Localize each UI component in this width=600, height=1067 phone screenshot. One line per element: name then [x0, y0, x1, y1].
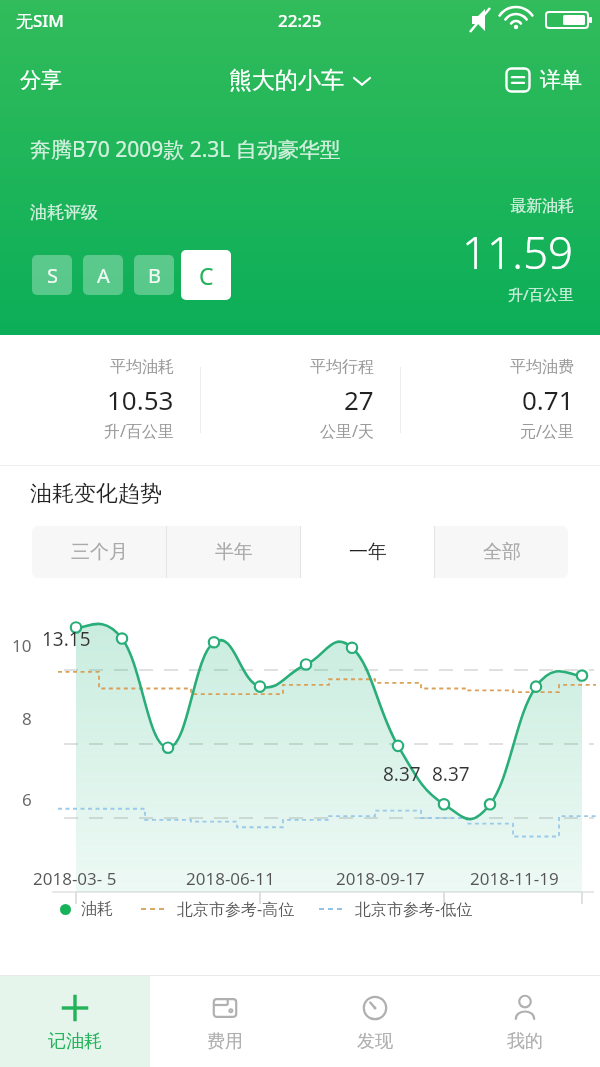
staticText: 一年 [349, 540, 387, 564]
button[interactable]: 发现 [300, 976, 450, 1067]
staticText: 奔腾B70 2009款 2.3L 自动豪华型 [30, 135, 341, 164]
staticText: 8.37 [383, 761, 421, 787]
button[interactable]: 平均油耗 [0, 335, 200, 465]
other: 切换车辆 [353, 75, 371, 87]
staticText: 2018-06-11 [186, 867, 275, 890]
staticText: 发现 [357, 1030, 393, 1053]
button[interactable]: 三个月 [32, 526, 166, 578]
staticText: 公里/天 [320, 420, 374, 442]
button[interactable]: 详单 [495, 67, 600, 93]
staticText: 13.15 [42, 626, 91, 652]
staticText: 10 [12, 634, 32, 657]
staticText: 最新油耗 [510, 196, 574, 216]
staticText: 8.37 [432, 761, 470, 787]
staticText: A [97, 262, 110, 289]
staticText: 我的 [507, 1030, 543, 1053]
staticText: 费用 [207, 1030, 243, 1053]
button[interactable]: 平均行程 [201, 335, 400, 465]
staticText: 平均行程 [310, 357, 374, 377]
staticText: 元/公里 [520, 420, 574, 442]
button[interactable]: C [181, 250, 231, 300]
button[interactable]: 分享 [0, 67, 78, 93]
staticText: 2018-09-17 [336, 867, 425, 890]
button[interactable]: 平均油费 [401, 335, 600, 465]
staticText: 2018-11-19 [470, 867, 559, 890]
staticText: C [199, 260, 214, 291]
staticText: 记油耗 [48, 1030, 102, 1053]
staticText: 2018-03- 5 [33, 867, 117, 890]
staticText: 0.71 [522, 382, 574, 417]
staticText: 平均油费 [510, 357, 574, 377]
button[interactable]: 我的 [450, 976, 600, 1067]
staticText: 油耗变化趋势 [30, 480, 162, 508]
staticText: 详单 [540, 67, 582, 93]
button[interactable]: 半年 [167, 526, 300, 578]
button[interactable]: 熊大的小车 [221, 66, 379, 95]
staticText: 升/百公里 [104, 420, 174, 442]
button[interactable]: 费用 [150, 976, 300, 1067]
staticText: 半年 [215, 540, 253, 564]
staticText: 10.53 [107, 382, 174, 417]
staticText: 22:25 [278, 9, 322, 32]
staticText: 全部 [483, 540, 521, 564]
staticText: S [47, 262, 58, 289]
staticText: 11.59 [462, 222, 574, 282]
staticText: 无SIM [16, 9, 64, 32]
button[interactable]: 一年 [301, 526, 434, 578]
staticText: B [148, 262, 161, 289]
staticText: 6 [22, 788, 32, 811]
staticText: 平均油耗 [110, 357, 174, 377]
staticText: 熊大的小车 [229, 66, 344, 95]
button[interactable]: S [32, 255, 72, 295]
staticText: 27 [344, 382, 374, 417]
staticText: 北京市参考-高位 [177, 898, 295, 920]
button[interactable]: 记油耗 [0, 976, 150, 1067]
staticText: 升/百公里 [508, 284, 574, 304]
staticText: 8 [22, 707, 32, 730]
button[interactable]: A [83, 255, 123, 295]
button[interactable]: 全部 [435, 526, 568, 578]
staticText: 油耗 [81, 899, 113, 919]
button[interactable]: B [134, 255, 174, 295]
staticText: 油耗评级 [30, 202, 98, 223]
staticText: 分享 [20, 67, 62, 93]
other: 详单 [505, 67, 531, 93]
staticText: 三个月 [71, 540, 128, 564]
staticText: 北京市参考-低位 [355, 898, 473, 920]
